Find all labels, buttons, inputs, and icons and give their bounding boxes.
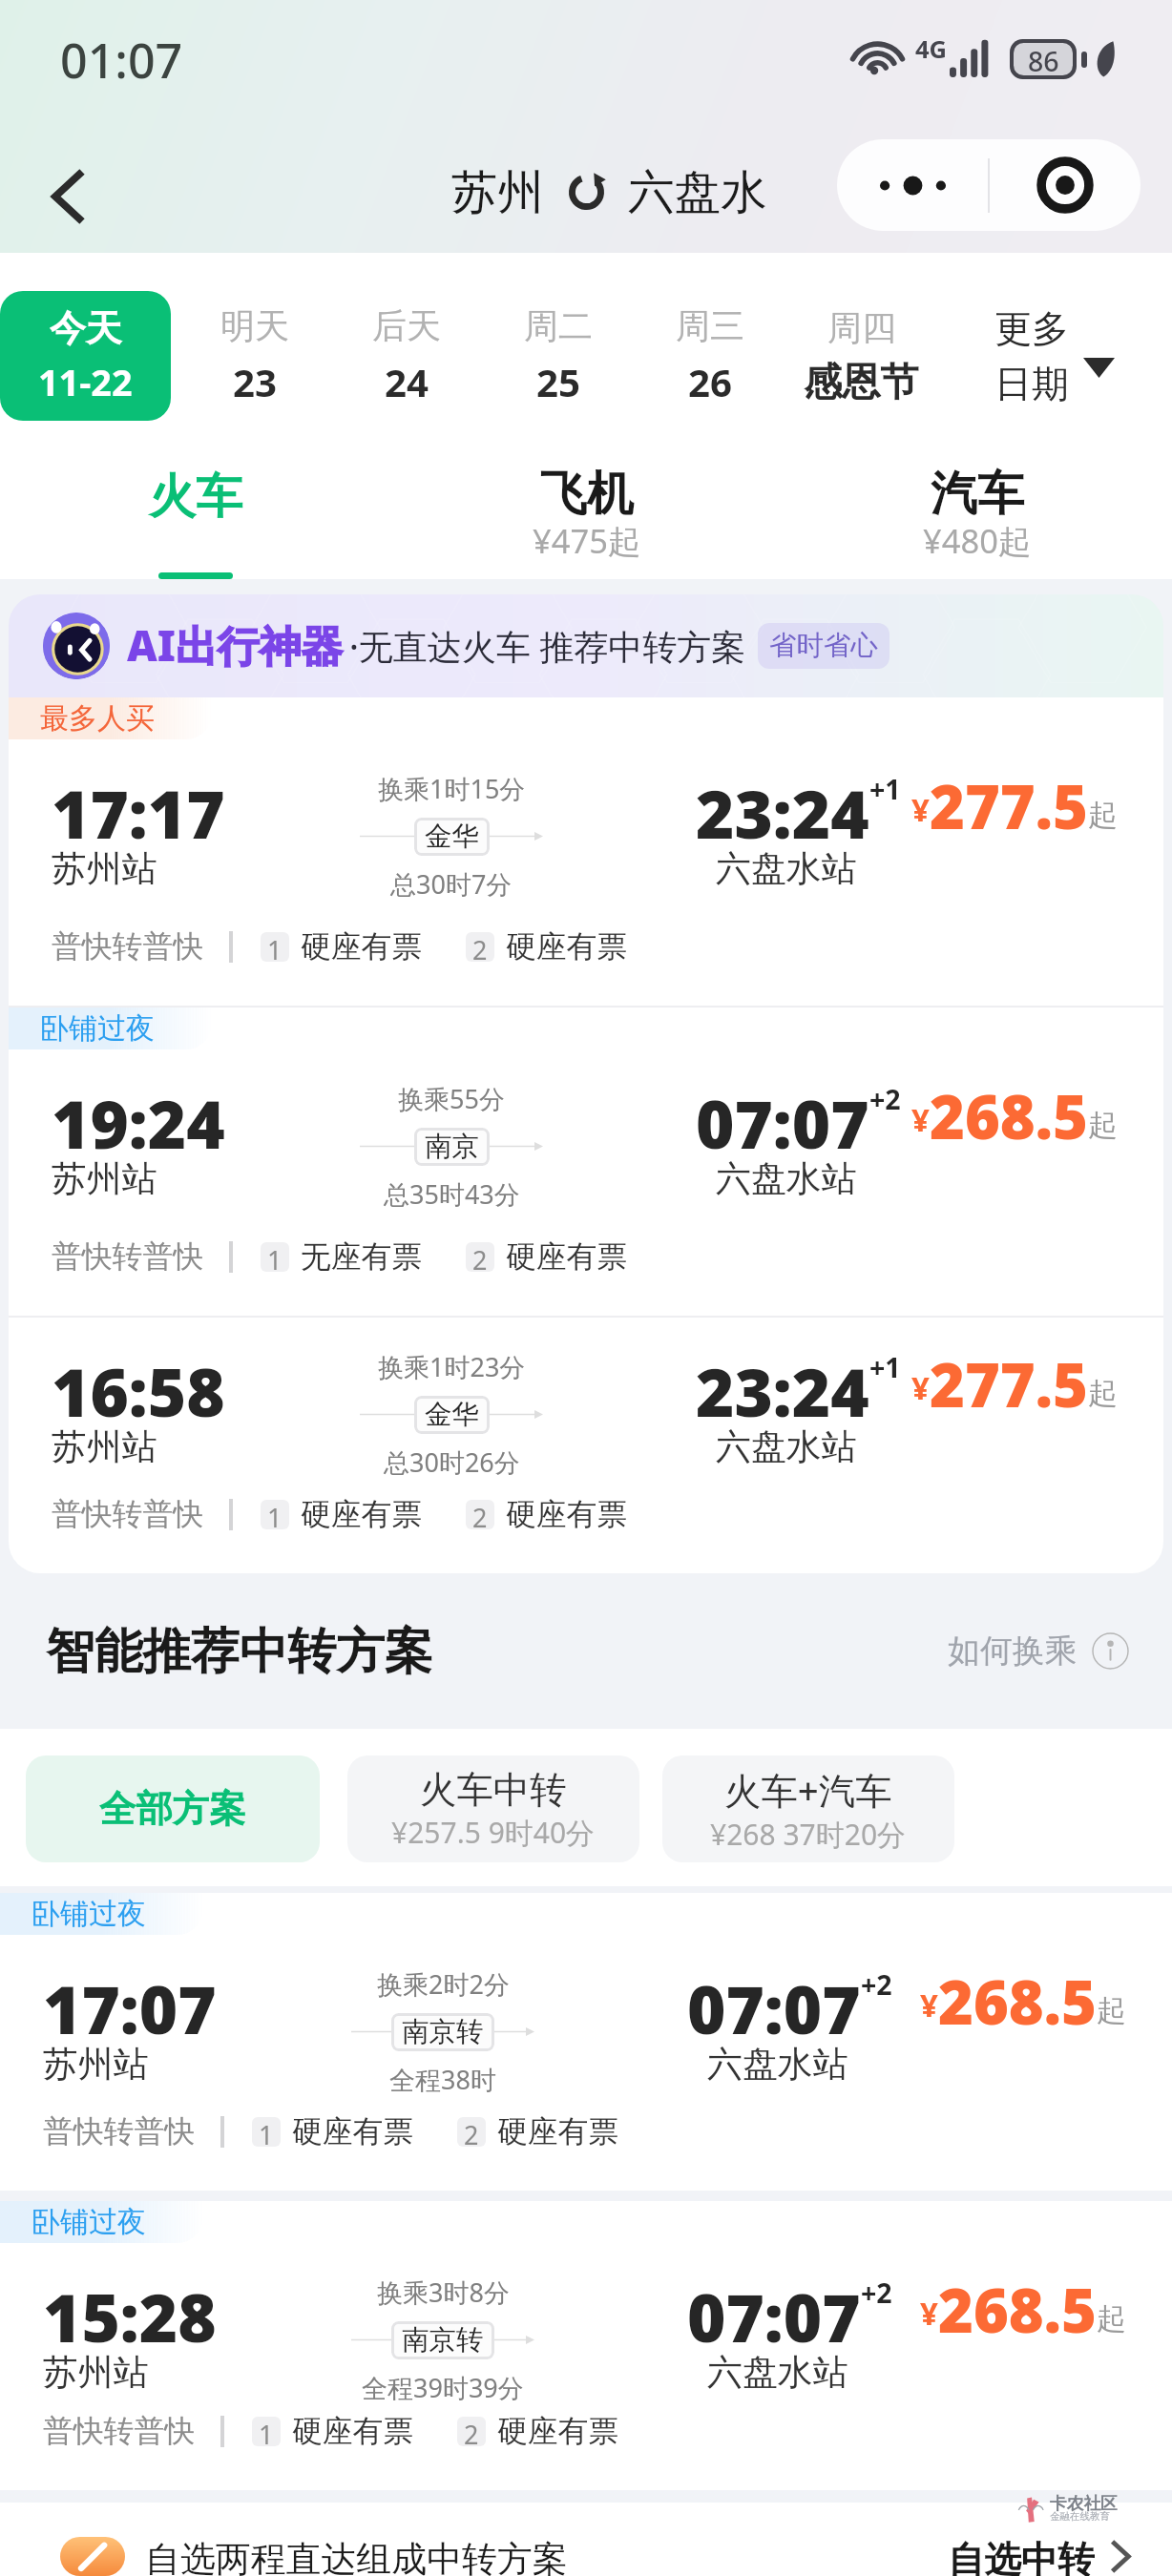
button[interactable]: More options: [837, 139, 988, 231]
staticText: 07:07: [687, 1963, 861, 2053]
staticText: 硬座有票: [497, 2412, 619, 2450]
staticText: 苏州站: [43, 2350, 149, 2394]
staticText: 24: [385, 356, 429, 408]
staticText: 总30时7分: [390, 866, 513, 902]
staticText: 明天: [220, 304, 289, 347]
staticText: 硬座有票: [506, 927, 628, 966]
staticText: 硬座有票: [292, 2412, 414, 2450]
button[interactable]: 明天: [179, 253, 330, 459]
staticText: 全程39时39分: [362, 2370, 524, 2405]
staticText: 268.5: [938, 1961, 1097, 2043]
button[interactable]: 火车+汽车: [662, 1755, 954, 1862]
staticText: ¥: [911, 1366, 930, 1409]
staticText: 日期: [994, 361, 1069, 407]
staticText: 换乘55分: [398, 1081, 505, 1116]
button[interactable]: 17:17: [9, 739, 1163, 1006]
button[interactable]: Back: [0, 117, 198, 253]
button[interactable]: 火车: [0, 459, 391, 579]
button[interactable]: 周四: [785, 253, 937, 459]
staticText: +2: [861, 2275, 892, 2312]
button[interactable]: 16:58: [9, 1318, 1163, 1573]
staticText: 省时省心: [769, 629, 878, 663]
staticText: ¥257.5 9时40分: [391, 1813, 596, 1852]
staticText: ¥: [911, 1098, 930, 1141]
staticText: 17:07: [43, 1963, 217, 2053]
staticText: 15:28: [43, 2272, 217, 2361]
staticText: 六盘水站: [716, 846, 857, 890]
staticText: 07:07: [687, 2272, 861, 2361]
staticText: ¥268 37时20分: [710, 1815, 907, 1854]
staticText: 六盘水站: [716, 1156, 857, 1200]
staticText: 苏州站: [43, 2042, 149, 2086]
staticText: 卧铺过夜: [31, 2204, 146, 2240]
staticText: 金华: [425, 820, 479, 854]
button[interactable]: 汽车: [782, 459, 1172, 579]
button[interactable]: 15:28: [0, 2243, 1172, 2490]
staticText: +1: [869, 771, 901, 808]
staticText: 飞机: [540, 465, 634, 524]
button[interactable]: 更多: [937, 253, 1172, 459]
staticText: 普快转普快: [43, 2112, 195, 2150]
staticText: 起: [1097, 1992, 1126, 2029]
staticText: 11-22: [38, 358, 133, 406]
staticText: 硬座有票: [292, 2112, 414, 2150]
staticText: 23:24: [696, 1346, 869, 1436]
button[interactable]: 19:24: [9, 1049, 1163, 1316]
staticText: 换乘3时8分: [377, 2275, 510, 2310]
staticText: 硬座有票: [506, 1495, 628, 1533]
staticText: 卧铺过夜: [31, 1896, 146, 1932]
button[interactable]: 飞机: [391, 459, 782, 579]
staticText: 硬座有票: [301, 1495, 423, 1533]
button[interactable]: AI出行神器: [9, 594, 1163, 697]
staticText: 周四: [827, 306, 896, 349]
button[interactable]: 火车中转: [347, 1755, 639, 1862]
staticText: 23: [233, 356, 277, 408]
staticText: 苏州站: [52, 1424, 157, 1468]
staticText: 起: [1088, 1375, 1118, 1412]
staticText: 南京转: [402, 2015, 484, 2049]
staticText: 19:24: [52, 1078, 225, 1168]
staticText: 268.5: [938, 2269, 1097, 2351]
staticText: 2: [472, 1242, 488, 1272]
staticText: 六盘水站: [707, 2042, 848, 2086]
staticText: 277.5: [930, 765, 1088, 847]
staticText: 更多: [994, 305, 1069, 352]
staticText: 硬座有票: [497, 2112, 619, 2150]
button[interactable]: 如何换乘: [948, 1631, 1129, 1672]
button[interactable]: 全部方案: [26, 1755, 320, 1862]
staticText: 自选两程直达组成中转方案: [145, 2537, 568, 2576]
staticText: 2: [472, 1500, 488, 1529]
staticText: ¥480起: [923, 518, 1032, 563]
staticText: 01:07: [60, 27, 183, 92]
staticText: 总30时26分: [384, 1444, 520, 1480]
staticText: 卡农社区: [1050, 2493, 1118, 2514]
staticText: 后天: [372, 304, 441, 347]
staticText: 周二: [524, 304, 593, 347]
button[interactable]: Close mini program: [990, 139, 1141, 231]
staticText: 1: [267, 1500, 283, 1529]
staticText: 火车中转: [420, 1767, 567, 1813]
staticText: 苏州站: [52, 846, 157, 890]
button[interactable]: 今天: [0, 291, 171, 421]
staticText: 最多人买: [40, 700, 155, 737]
button[interactable]: 后天: [330, 253, 482, 459]
staticText: 起: [1097, 2300, 1126, 2337]
staticText: +2: [861, 1966, 892, 2004]
staticText: 23:24: [696, 768, 869, 858]
staticText: ·无直达火车 推荐中转方案: [349, 623, 746, 670]
button[interactable]: 周二: [482, 253, 634, 459]
staticText: 金融在线教育: [1050, 2510, 1110, 2523]
button[interactable]: 周三: [634, 253, 785, 459]
button[interactable]: 自选两程直达组成中转方案: [60, 2537, 1132, 2576]
staticText: 火车: [149, 467, 242, 527]
staticText: 汽车: [931, 465, 1024, 524]
staticText: 如何换乘: [948, 1631, 1078, 1672]
staticText: 07:07: [696, 1078, 869, 1168]
staticText: 25: [536, 356, 580, 408]
staticText: 六盘水站: [716, 1424, 857, 1468]
staticText: 268.5: [930, 1075, 1088, 1157]
staticText: 无座有票: [301, 1237, 423, 1276]
staticText: 普快转普快: [52, 1237, 203, 1276]
staticText: 16:58: [52, 1346, 225, 1436]
button[interactable]: 17:07: [0, 1935, 1172, 2191]
